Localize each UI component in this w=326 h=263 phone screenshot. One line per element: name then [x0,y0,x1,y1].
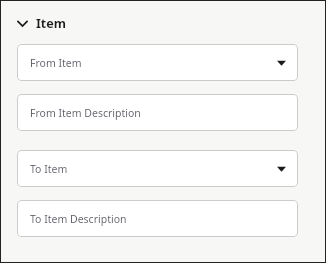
button[interactable]: From Item [17,44,298,81]
button[interactable]: From Item Description [17,94,298,131]
staticText: To Item [30,162,68,176]
button[interactable]: To Item [17,150,298,187]
other: Collapse Item section [17,18,28,29]
staticText: Item [36,15,66,32]
staticText: From Item Description [30,106,141,120]
staticText: From Item [30,56,82,70]
other: Open dropdown [277,60,286,66]
button[interactable]: To Item Description [17,200,298,237]
staticText: To Item Description [30,212,127,226]
other: Open dropdown [277,166,286,172]
button[interactable]: Collapse Item section [17,13,66,33]
